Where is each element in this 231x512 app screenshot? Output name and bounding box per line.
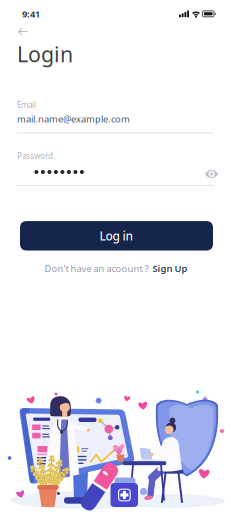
staticText: Email [17,100,36,110]
staticText: Sign Up [152,262,187,275]
staticText: Don't have an acoount ? [44,262,148,275]
staticText: mail.name@example.com [17,113,130,125]
staticText: Log in [99,228,133,244]
button[interactable]: Sign Up [152,262,187,275]
button[interactable]: Log in [20,221,213,251]
staticText: Password [17,151,53,161]
staticText: Login [17,40,73,68]
button[interactable] [17,164,214,180]
button[interactable] [203,168,219,180]
staticText: 9:41 [22,8,40,20]
button[interactable]: mail.name@example.com [17,111,214,127]
button[interactable] [17,24,31,38]
